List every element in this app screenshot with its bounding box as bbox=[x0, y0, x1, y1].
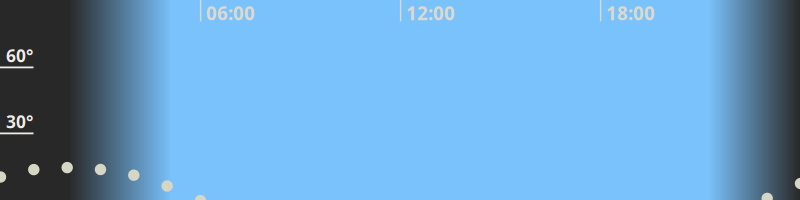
staticText: 06:00 bbox=[206, 1, 255, 25]
button[interactable]: 06:00 bbox=[206, 2, 262, 23]
button[interactable]: 18:00 bbox=[606, 2, 662, 23]
staticText: 60° bbox=[6, 44, 33, 67]
staticText: 12:00 bbox=[406, 1, 455, 25]
staticText: 18:00 bbox=[606, 1, 655, 25]
staticText: 30° bbox=[6, 110, 33, 133]
button[interactable]: 12:00 bbox=[406, 2, 462, 23]
